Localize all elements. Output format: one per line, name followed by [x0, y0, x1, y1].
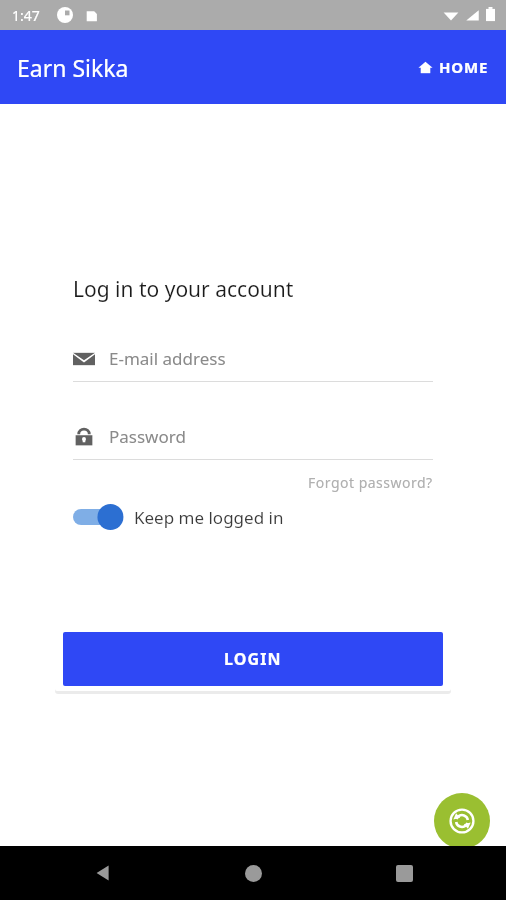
button[interactable]: LOGIN: [63, 632, 443, 686]
other: Password: [73, 426, 95, 448]
staticText: Log in to your account: [73, 275, 294, 304]
button[interactable]: Forgot password?: [55, 473, 451, 492]
button[interactable]: Home: [245, 865, 262, 882]
staticText: Password: [109, 425, 186, 448]
other: Email: [73, 348, 95, 370]
button[interactable]: HOME: [401, 45, 506, 89]
staticText: 1:47: [12, 6, 40, 25]
staticText: Keep me logged in: [134, 506, 284, 529]
staticText: Forgot password?: [308, 473, 433, 492]
button[interactable]: Keep me logged in: [55, 504, 451, 530]
staticText: HOME: [439, 57, 489, 77]
staticText: LOGIN: [224, 648, 282, 670]
button[interactable]: Recents: [396, 865, 413, 882]
staticText: E-mail address: [109, 347, 226, 370]
button[interactable]: Email: [73, 347, 433, 382]
staticText: Earn Sikka: [17, 52, 129, 83]
button[interactable]: Refresh: [434, 793, 490, 849]
button[interactable]: Back: [93, 863, 113, 883]
button[interactable]: Password: [73, 425, 433, 460]
